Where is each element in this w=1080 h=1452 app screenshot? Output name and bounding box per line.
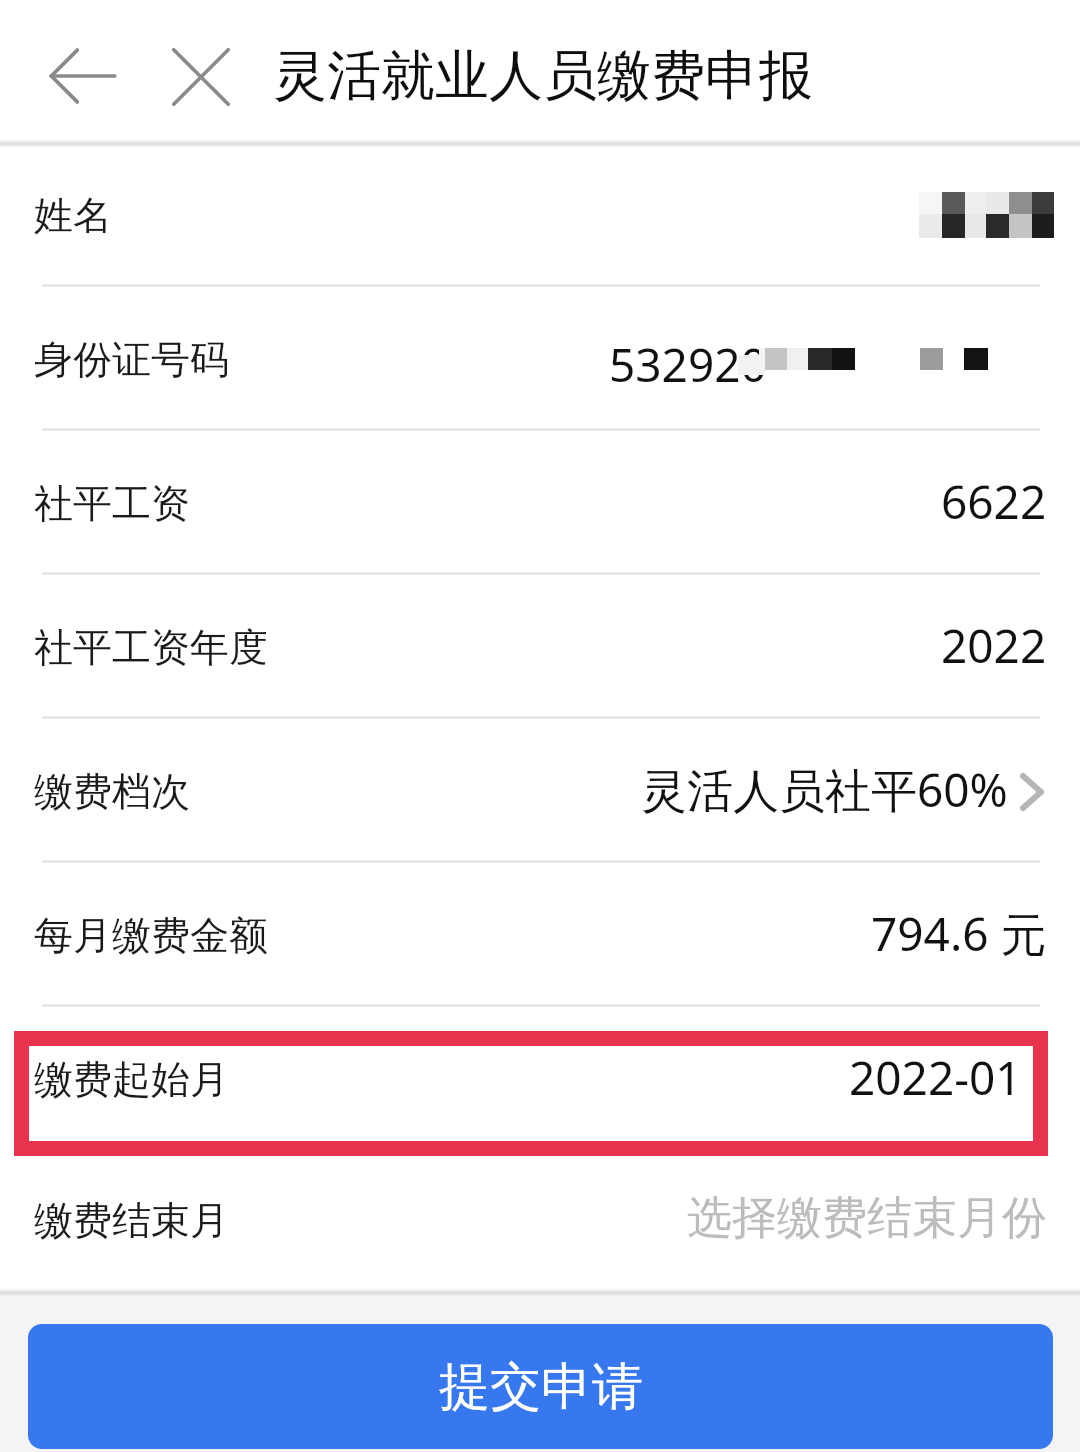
staticText: 灵活就业人员缴费申报 [273, 42, 813, 110]
staticText: 提交申请 [439, 1355, 643, 1419]
staticText: 缴费档次 [34, 767, 190, 816]
staticText: 2022-01 [849, 1046, 1022, 1109]
button[interactable]: 缴费档次 [0, 719, 1080, 863]
staticText: 社平工资 [34, 479, 190, 528]
staticText: 缴费起始月 [34, 1055, 229, 1104]
button[interactable]: 每月缴费金额 [0, 863, 1080, 1007]
staticText: 身份证号码 [34, 335, 229, 384]
staticText: 532920 [609, 333, 767, 385]
staticText: 选择缴费结束月份 [687, 1190, 1047, 1247]
staticText: 缴费结束月 [34, 1196, 229, 1245]
staticText: 社平工资年度 [34, 623, 268, 672]
button[interactable]: 社平工资 [0, 431, 1080, 575]
button[interactable]: 姓名 [0, 143, 1080, 287]
button[interactable]: Close [141, 17, 261, 137]
staticText: 6622 [941, 470, 1047, 533]
staticText: 灵活人员社平60% [641, 758, 1008, 821]
staticText: 姓名 [34, 191, 112, 240]
staticText: 2022 [941, 614, 1047, 677]
button[interactable]: Back [23, 16, 143, 136]
button[interactable]: 社平工资年度 [0, 575, 1080, 719]
staticText: 每月缴费金额 [34, 911, 268, 960]
staticText: 794.6 元 [871, 902, 1047, 965]
button[interactable]: 缴费结束月 [0, 1151, 1080, 1289]
button[interactable]: 缴费起始月 [0, 1007, 1080, 1151]
button[interactable]: 提交申请 [28, 1324, 1053, 1449]
button[interactable]: 身份证号码 [0, 287, 1080, 431]
